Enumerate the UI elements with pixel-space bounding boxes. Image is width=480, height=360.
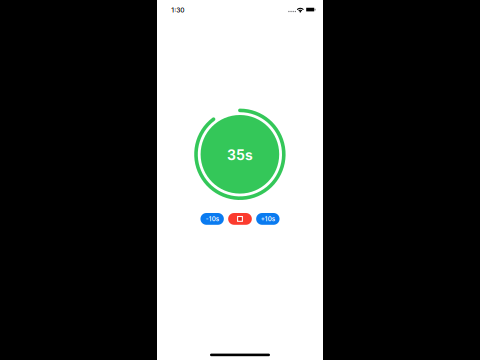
- staticText: 35s: [227, 147, 253, 164]
- staticText: -10s: [206, 215, 219, 223]
- button[interactable]: +10s: [256, 213, 279, 225]
- staticText: 1:30: [171, 6, 184, 14]
- button[interactable]: -10s: [200, 213, 224, 225]
- button[interactable]: Stop: [228, 213, 252, 225]
- staticText: +10s: [261, 215, 275, 223]
